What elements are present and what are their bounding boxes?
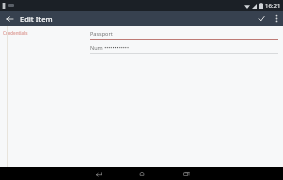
button[interactable]: Back [0, 11, 20, 26]
button[interactable]: Num •••••••••••• [90, 42, 278, 54]
button[interactable]: More options [269, 11, 283, 26]
button[interactable]: Passport [90, 28, 278, 40]
staticText: Credentials [3, 30, 28, 36]
staticText: 16:21 [265, 2, 281, 10]
staticText: Num •••••••••••• [90, 44, 129, 51]
button[interactable]: Save [253, 11, 269, 26]
button[interactable]: Home [134, 167, 150, 180]
staticText: Passport [90, 30, 113, 37]
button[interactable]: Recent apps [178, 167, 194, 180]
staticText: Edit Item [20, 14, 53, 24]
button[interactable]: Back [90, 167, 106, 180]
